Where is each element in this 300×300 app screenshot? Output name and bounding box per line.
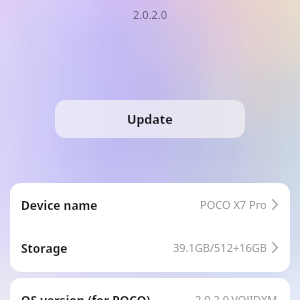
staticText: Device name [21,197,98,213]
staticText: Storage [21,240,68,256]
button[interactable]: Update [55,100,245,138]
staticText: POCO X7 Pro [200,197,267,212]
staticText: 2.0.2.0 [0,7,300,22]
staticText: 2.0.2.0.VQJIDXM [195,292,278,300]
button[interactable]: Storage [10,226,290,269]
staticText: OS version (for POCO) [21,292,151,300]
staticText: Update [127,111,173,128]
button[interactable]: Device name [10,183,290,226]
button[interactable]: OS version (for POCO) [10,278,290,300]
staticText: 39.1GB/512+16GB [173,240,267,255]
